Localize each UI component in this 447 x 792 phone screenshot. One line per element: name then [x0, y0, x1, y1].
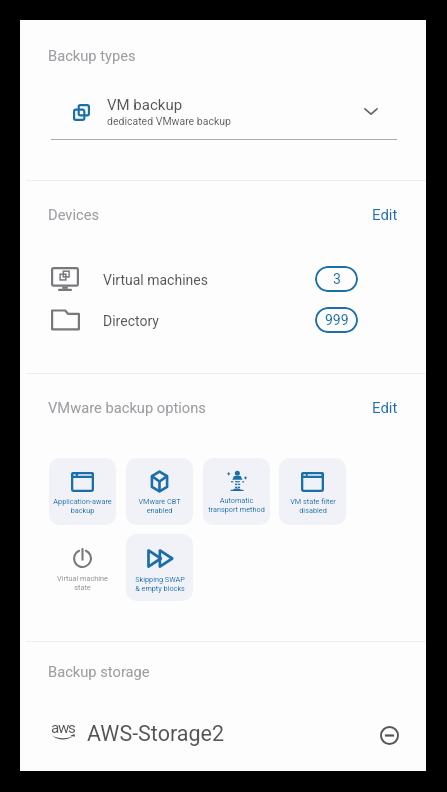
button[interactable]: Automatic transport method [203, 458, 270, 525]
button[interactable]: Edit [372, 209, 398, 227]
staticText: 3 [333, 271, 341, 287]
button[interactable]: Virtual machines [49, 266, 397, 296]
button[interactable]: VM state filter disabled [279, 458, 346, 525]
button[interactable]: Remove storage [380, 726, 399, 745]
staticText: VMware backup options [48, 399, 206, 416]
staticText: Virtual machine state [57, 574, 108, 591]
button[interactable] [51, 92, 397, 140]
staticText: 999 [325, 312, 349, 328]
staticText: AWS-Storage2 [87, 721, 225, 746]
other: Expand [364, 108, 378, 115]
staticText: Edit [372, 206, 398, 224]
staticText: VM state filter disabled [290, 497, 336, 514]
staticText: Backup storage [48, 663, 150, 680]
staticText: Application-aware backup [53, 497, 112, 514]
staticText: Edit [372, 399, 398, 417]
button[interactable]: Virtual machine state [49, 534, 116, 601]
staticText: VMware CBT enabled [138, 497, 181, 514]
button[interactable]: Skipping SWAP & empty blocks [126, 534, 193, 601]
staticText: Virtual machines [103, 272, 208, 288]
staticText: VM backup [107, 96, 183, 114]
staticText: Backup types [48, 47, 136, 64]
button[interactable]: Application-aware backup [49, 458, 116, 525]
staticText: aws [51, 719, 75, 737]
staticText: Skipping SWAP & empty blocks [135, 575, 185, 592]
button[interactable]: Directory [49, 307, 397, 337]
staticText: dedicated VMware backup [107, 115, 231, 127]
button[interactable]: VMware CBT enabled [126, 458, 193, 525]
staticText: Automatic transport method [208, 496, 265, 513]
button[interactable] [49, 714, 397, 756]
staticText: Devices [48, 206, 100, 223]
staticText: Directory [103, 313, 159, 329]
button[interactable]: Edit [372, 402, 398, 420]
